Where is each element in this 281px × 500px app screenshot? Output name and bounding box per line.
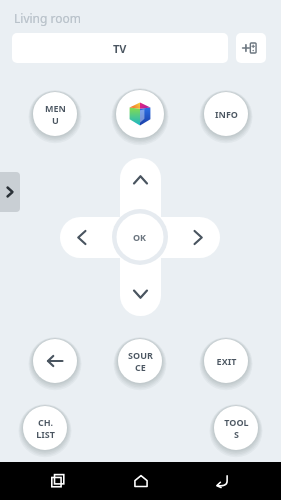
button[interactable]: Down [120,264,161,316]
staticText: MENU [42,102,69,127]
button[interactable]: Open panel [0,172,20,212]
staticText: CH. LIST [32,416,59,441]
button[interactable]: Home [118,462,164,500]
staticText: OK [133,231,147,243]
staticText: TV [113,41,127,56]
button[interactable]: Back [33,339,77,383]
button[interactable]: EXIT [204,339,248,383]
staticText: EXIT [213,355,240,367]
button[interactable]: Recents [36,462,82,500]
button[interactable]: INFO [204,92,248,136]
button[interactable]: MENU [33,92,77,136]
button[interactable]: CH. LIST [23,406,67,450]
button[interactable]: Left [60,217,112,258]
button[interactable]: OK [112,209,168,265]
staticText: SOURCE [127,349,154,374]
button[interactable]: Up [120,158,161,210]
button[interactable]: Back [199,462,245,500]
staticText: INFO [213,108,240,120]
button[interactable]: SOURCE [118,339,162,383]
staticText: TOOLS [223,416,250,441]
button[interactable]: TV [12,33,228,63]
staticText: Living room [14,10,81,26]
button[interactable]: Smart Hub [116,90,164,138]
button[interactable]: Right [168,217,220,258]
button[interactable]: Add device [236,33,266,63]
button[interactable]: TOOLS [214,406,258,450]
